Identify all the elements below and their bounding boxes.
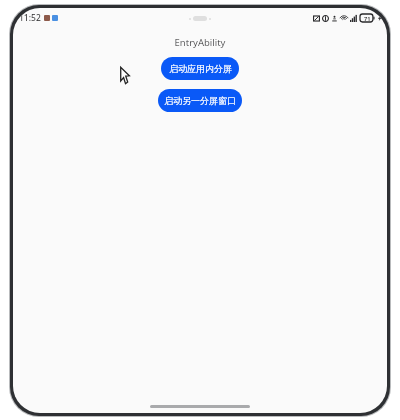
staticText: 启动另一分屏窗口: [164, 95, 236, 106]
button[interactable]: 启动另一分屏窗口: [158, 89, 242, 112]
staticText: 11:52: [19, 12, 41, 24]
staticText: 71: [364, 15, 371, 22]
button[interactable]: 启动应用内分屏: [161, 57, 239, 80]
staticText: 启动应用内分屏: [169, 63, 232, 74]
staticText: EntryAbility: [13, 36, 387, 49]
